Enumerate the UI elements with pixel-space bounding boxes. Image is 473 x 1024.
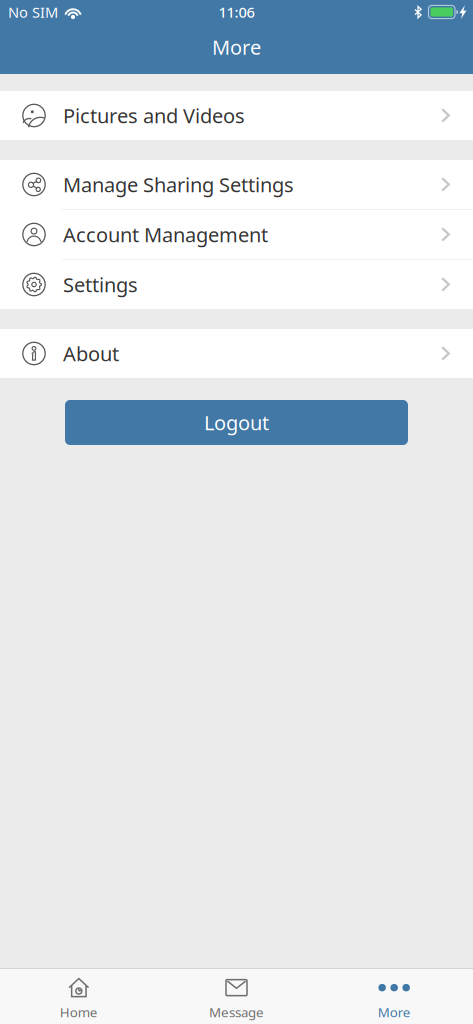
staticText: About	[63, 340, 119, 367]
button[interactable]: More	[315, 968, 473, 1024]
button[interactable]: About	[0, 329, 473, 378]
staticText: Manage Sharing Settings	[63, 171, 294, 198]
staticText: Settings	[63, 271, 138, 298]
button[interactable]: Message	[158, 968, 315, 1024]
staticText: More	[378, 1003, 411, 1021]
button[interactable]: Pictures and Videos	[0, 91, 473, 140]
button[interactable]: Settings	[0, 260, 473, 309]
staticText: Message	[209, 1003, 264, 1021]
button[interactable]: Manage Sharing Settings	[0, 160, 473, 210]
staticText: More	[212, 34, 261, 60]
button[interactable]: Logout	[65, 400, 408, 445]
button[interactable]: Home	[0, 968, 158, 1024]
button[interactable]: More	[0, 24, 473, 74]
staticText: Pictures and Videos	[63, 102, 245, 129]
button[interactable]: Account Management	[0, 210, 473, 260]
staticText: Logout	[204, 409, 269, 436]
staticText: Account Management	[63, 221, 268, 248]
staticText: 11:06	[218, 2, 254, 22]
staticText: No SIM	[8, 2, 58, 22]
staticText: Home	[60, 1003, 98, 1021]
